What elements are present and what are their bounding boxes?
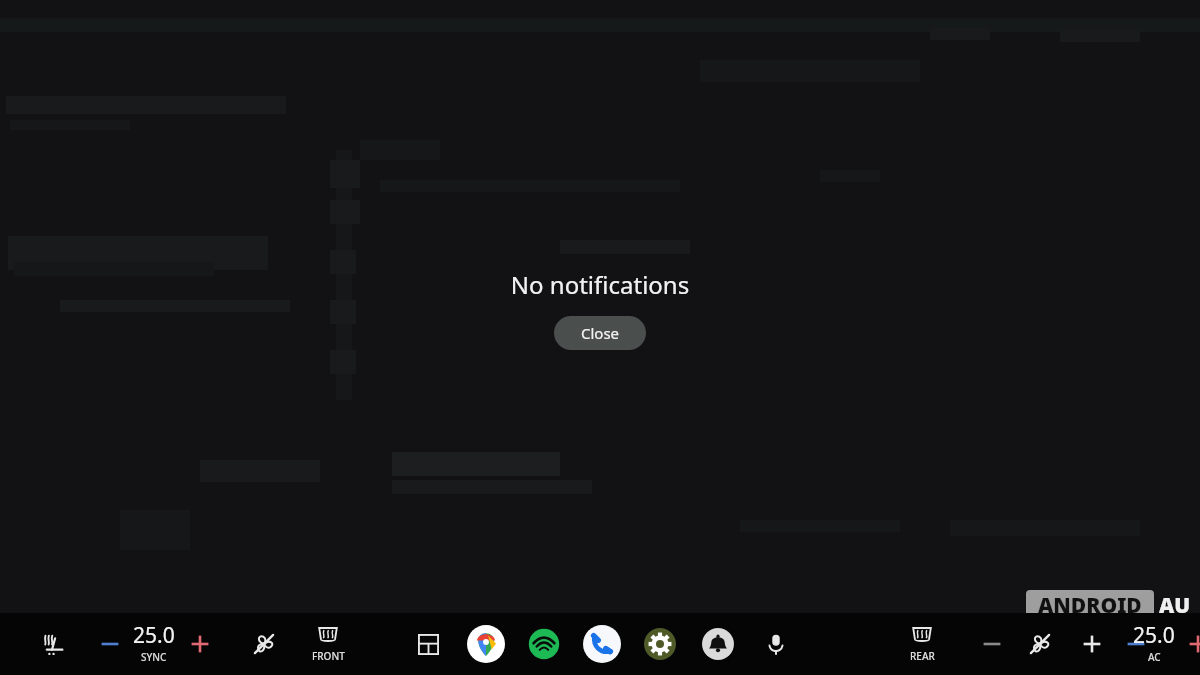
button[interactable]: App grid: [406, 622, 450, 666]
button[interactable]: Decrease fan speed: [974, 626, 1010, 662]
staticText: ANDROID: [1038, 591, 1142, 620]
button[interactable]: Fan off: [244, 624, 284, 664]
staticText: REAR: [910, 649, 935, 663]
button[interactable]: FRONT: [302, 624, 354, 663]
button[interactable]: Voice assistant: [754, 622, 798, 666]
button[interactable]: Increase passenger temperature: [1180, 626, 1200, 662]
button[interactable]: Increase driver temperature: [182, 626, 218, 662]
button[interactable]: Settings: [638, 622, 682, 666]
staticText: 25.0: [133, 621, 175, 650]
button[interactable]: Driver seat heater: [30, 622, 74, 666]
button[interactable]: Increase fan speed: [1074, 626, 1110, 662]
staticText: AU: [1159, 591, 1191, 620]
staticText: No notifications: [0, 268, 1200, 301]
staticText: Close: [581, 323, 620, 343]
staticText: FRONT: [312, 649, 345, 663]
button[interactable]: Close: [554, 316, 646, 350]
staticText: 25.0: [1133, 621, 1175, 650]
button[interactable]: Spotify: [522, 622, 566, 666]
staticText: AC: [1148, 650, 1161, 664]
button[interactable]: Notifications: [696, 622, 740, 666]
button[interactable]: Phone: [580, 622, 624, 666]
button[interactable]: 25.0: [118, 621, 190, 664]
button[interactable]: 25.0: [1122, 621, 1186, 664]
button[interactable]: REAR: [896, 624, 948, 663]
button[interactable]: Decrease driver temperature: [92, 626, 128, 662]
button[interactable]: Decrease passenger temperature: [1118, 626, 1154, 662]
button[interactable]: Maps: [464, 622, 508, 666]
button[interactable]: Fan off: [1020, 624, 1060, 664]
staticText: SYNC: [141, 650, 167, 664]
